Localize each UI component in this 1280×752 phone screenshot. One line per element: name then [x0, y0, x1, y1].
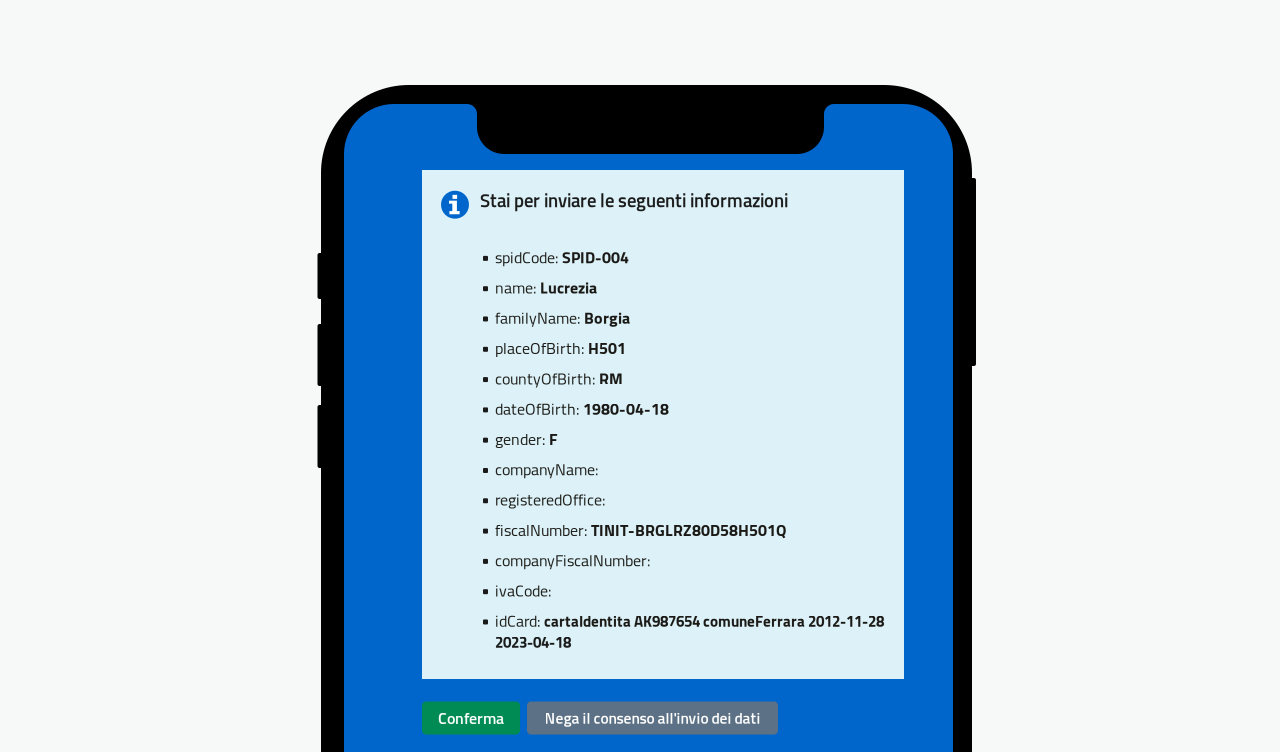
- staticText: Stai per inviare le seguenti informazion…: [480, 186, 788, 214]
- staticText: spidCode: SPID-004: [495, 245, 629, 269]
- staticText: placeOfBirth: H501: [495, 336, 626, 360]
- staticText: companyFiscalNumber:: [495, 548, 654, 572]
- staticText: dateOfBirth: 1980-04-18: [495, 397, 669, 421]
- staticText: ivaCode:: [495, 579, 555, 602]
- staticText: name: Lucrezia: [495, 276, 597, 299]
- staticText: Conferma: [438, 706, 504, 730]
- staticText: registeredOffice:: [495, 488, 609, 511]
- button[interactable]: Nega il consenso all'invio dei dati: [527, 701, 778, 734]
- staticText: countyOfBirth: RM: [495, 367, 623, 390]
- button[interactable]: Conferma: [422, 701, 520, 734]
- staticText: fiscalNumber: TINIT-BRGLRZ80D58H501Q: [495, 518, 786, 542]
- staticText: Nega il consenso all'invio dei dati: [544, 706, 760, 730]
- staticText: companyName:: [495, 457, 602, 481]
- staticText: familyName: Borgia: [495, 306, 630, 330]
- staticText: gender: F: [495, 427, 557, 451]
- staticText: 2023-04-18: [495, 630, 571, 653]
- staticText: idCard: cartaIdentita AK987654 comuneFer…: [495, 609, 884, 633]
